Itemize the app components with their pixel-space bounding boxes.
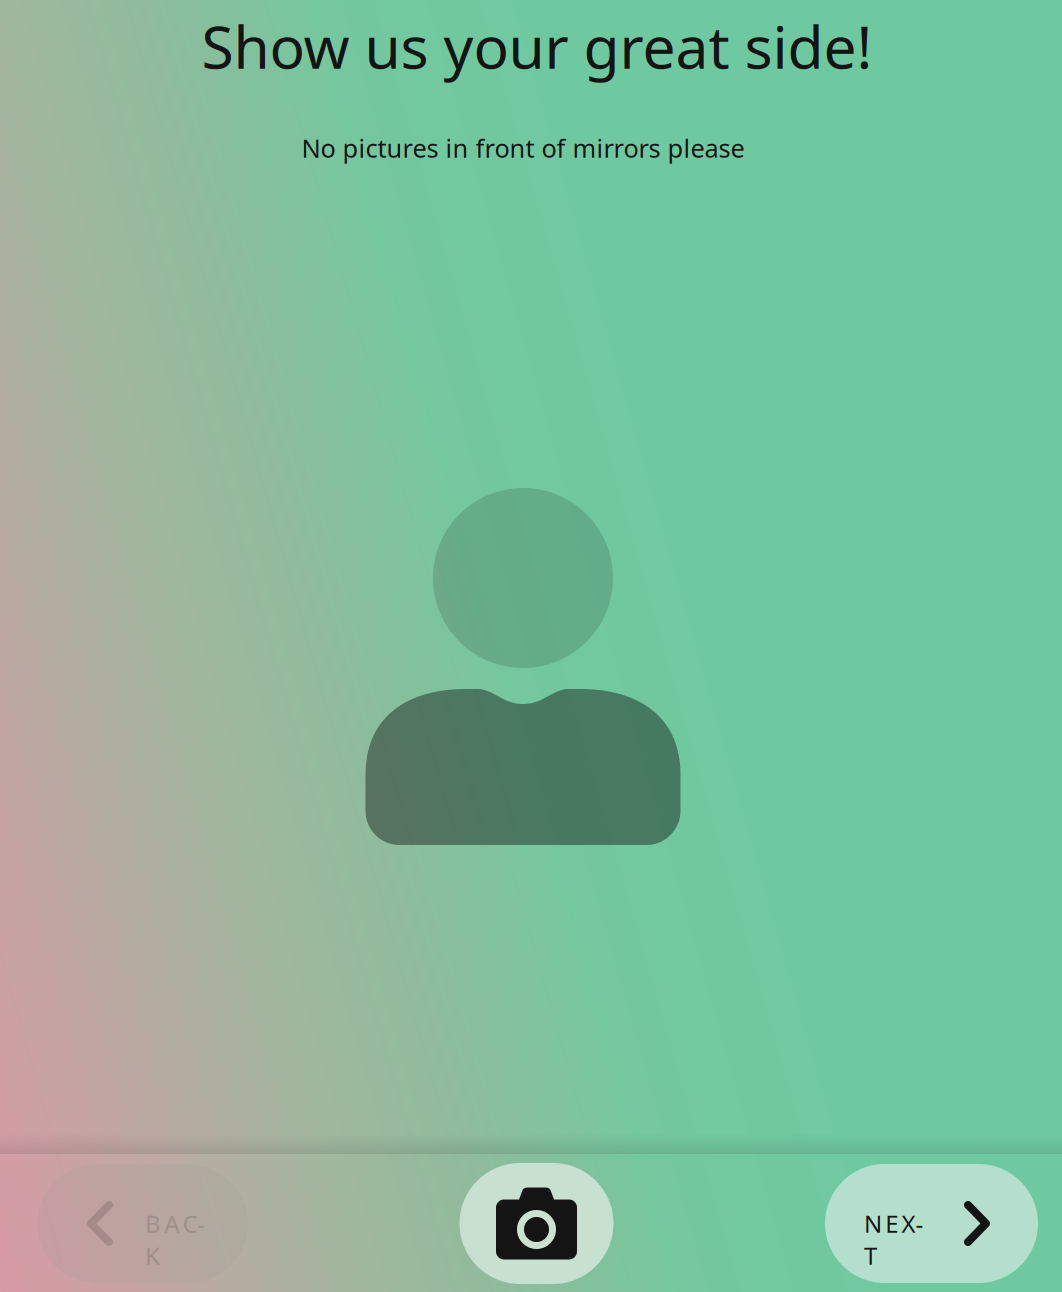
staticText: Show us your great side! [201, 7, 872, 85]
button[interactable]: NEXT [825, 1164, 1038, 1283]
staticText: No pictures in front of mirrors please [301, 131, 744, 165]
button[interactable]: Take photo [459, 1163, 613, 1284]
staticText: NEXT [864, 1208, 932, 1239]
staticText: BACK [145, 1208, 216, 1239]
button[interactable]: BACK [37, 1164, 248, 1282]
